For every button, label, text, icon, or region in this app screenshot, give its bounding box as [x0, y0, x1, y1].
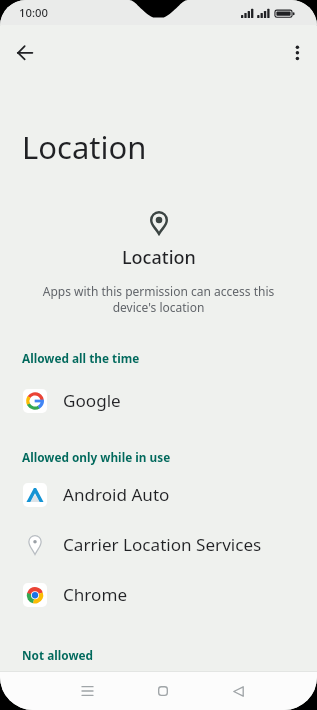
button[interactable]: Carrier Location Services [0, 519, 317, 569]
staticText: 10:00 [19, 5, 48, 20]
button[interactable]: Android Auto [0, 469, 317, 519]
staticText: Not allowed [22, 647, 93, 663]
staticText: Google [63, 389, 121, 412]
button[interactable]: Google [0, 375, 317, 425]
button[interactable]: More options [276, 29, 316, 69]
button[interactable]: Home [143, 672, 183, 710]
staticText: Location [122, 245, 196, 270]
button[interactable]: Recent apps [67, 672, 107, 710]
staticText: Carrier Location Services [63, 533, 262, 556]
button[interactable]: Chrome [0, 569, 317, 619]
staticText: Chrome [63, 583, 128, 606]
staticText: Location [22, 126, 147, 168]
staticText: Android Auto [63, 483, 170, 506]
staticText: Allowed only while in use [22, 449, 171, 465]
button[interactable]: Back [5, 29, 45, 69]
staticText: Allowed all the time [22, 350, 140, 366]
button[interactable]: Back [218, 672, 258, 710]
staticText: Apps with this permission can access thi… [22, 283, 295, 315]
